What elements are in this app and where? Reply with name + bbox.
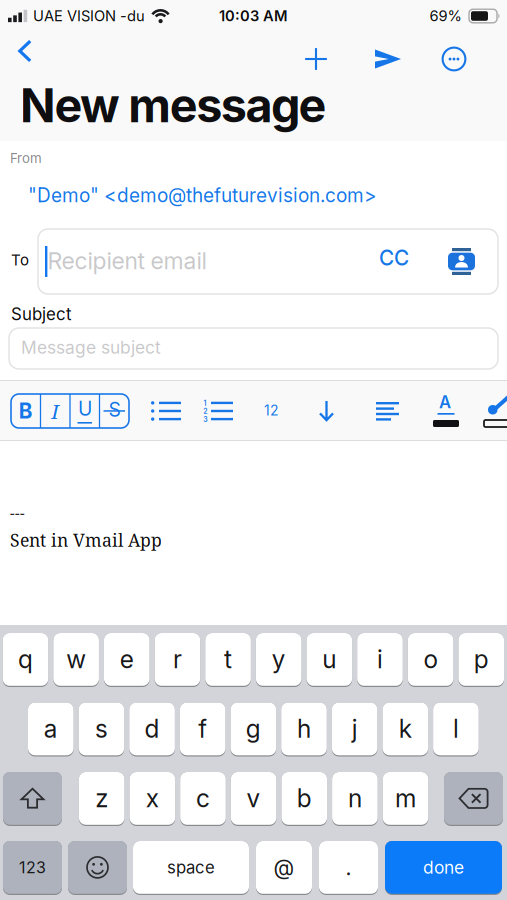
button[interactable]: k: [382, 702, 428, 756]
button[interactable]: h: [281, 702, 327, 756]
staticText: n: [348, 783, 362, 813]
button[interactable]: Align text: [376, 402, 399, 421]
button[interactable]: Insert: [319, 400, 334, 421]
staticText: k: [399, 714, 412, 744]
staticText: Message subject: [21, 337, 161, 358]
button[interactable]: 123: [3, 841, 62, 895]
button[interactable]: y: [256, 633, 301, 687]
button[interactable]: e: [104, 633, 150, 687]
button[interactable]: d: [129, 702, 175, 756]
staticText: Recipient email: [47, 247, 206, 275]
staticText: To: [11, 251, 29, 269]
button[interactable]: .: [319, 841, 378, 895]
staticText: t: [224, 644, 232, 674]
staticText: l: [453, 714, 459, 744]
staticText: s: [95, 714, 108, 744]
staticText: "Demo" <demo@thefuturevision.com>: [28, 184, 377, 207]
staticText: w: [66, 644, 86, 674]
staticText: New message: [20, 77, 326, 133]
button[interactable]: v: [231, 772, 276, 826]
button[interactable]: n: [332, 772, 378, 826]
staticText: b: [297, 783, 312, 813]
button[interactable]: c: [180, 772, 226, 826]
staticText: space: [167, 857, 215, 877]
button[interactable]: p: [458, 633, 504, 687]
staticText: done: [423, 857, 464, 878]
button[interactable]: t: [205, 633, 251, 687]
staticText: m: [395, 783, 416, 813]
staticText: y: [272, 644, 286, 674]
staticText: A: [439, 392, 451, 412]
staticText: e: [120, 644, 134, 674]
button[interactable]: Bullet list: [151, 400, 181, 422]
button[interactable]: i: [357, 633, 403, 687]
staticText: a: [44, 714, 58, 744]
staticText: .: [345, 854, 351, 880]
button[interactable]: u: [306, 633, 352, 687]
staticText: d: [145, 714, 160, 744]
button[interactable]: q: [3, 633, 48, 687]
button[interactable]: Highlight color: [484, 394, 507, 427]
staticText: p: [474, 644, 489, 674]
button[interactable]: Recipient email: [38, 229, 498, 294]
staticText: j: [352, 714, 358, 744]
button[interactable]: l: [433, 702, 479, 756]
button[interactable]: s: [79, 702, 124, 756]
button[interactable]: Add: [299, 41, 333, 77]
button[interactable]: Italic: [40, 394, 70, 428]
staticText: c: [196, 783, 210, 813]
button[interactable]: Shift: [3, 772, 62, 826]
staticText: z: [95, 783, 108, 813]
staticText: 10:03 AM: [219, 7, 288, 25]
staticText: r: [173, 644, 182, 674]
button[interactable]: f: [180, 702, 225, 756]
staticText: ---: [10, 503, 25, 523]
button[interactable]: x: [129, 772, 175, 826]
button[interactable]: Bold: [11, 394, 40, 428]
button[interactable]: g: [231, 702, 276, 756]
button[interactable]: Text color: [433, 394, 459, 427]
staticText: o: [424, 644, 438, 674]
staticText: 2: [203, 407, 207, 415]
staticText: 1: [204, 399, 207, 407]
button[interactable]: Font size: [264, 402, 279, 419]
button[interactable]: Numbered list: [203, 400, 233, 422]
button[interactable]: Back: [8, 33, 42, 69]
staticText: B: [19, 398, 33, 423]
button[interactable]: j: [332, 702, 377, 756]
staticText: 69%: [429, 7, 461, 25]
button[interactable]: @: [256, 841, 312, 895]
staticText: f: [198, 714, 207, 744]
button[interactable]: a: [28, 702, 74, 756]
staticText: q: [18, 644, 33, 674]
button[interactable]: w: [53, 633, 99, 687]
staticText: @: [273, 854, 294, 880]
button[interactable]: Send: [370, 41, 406, 77]
button[interactable]: Add contact: [448, 248, 475, 275]
staticText: u: [322, 644, 336, 674]
button[interactable]: CC: [375, 242, 413, 274]
staticText: g: [246, 714, 261, 744]
staticText: S: [108, 398, 120, 421]
button[interactable]: done: [385, 841, 502, 895]
button[interactable]: "Demo" <demo@thefuturevision.com>: [28, 184, 377, 207]
staticText: From: [10, 150, 42, 166]
staticText: Sent in Vmail App: [10, 528, 162, 552]
button[interactable]: m: [383, 772, 428, 826]
button[interactable]: o: [408, 633, 453, 687]
staticText: UAE VISION -du: [33, 7, 145, 25]
button[interactable]: z: [79, 772, 124, 826]
staticText: Subject: [11, 304, 71, 324]
button[interactable]: Strikethrough: [99, 394, 129, 428]
staticText: h: [297, 714, 311, 744]
button[interactable]: Delete: [444, 772, 503, 826]
button[interactable]: b: [281, 772, 327, 826]
staticText: 3: [203, 415, 207, 424]
button[interactable]: r: [155, 633, 200, 687]
button[interactable]: Emoji: [68, 841, 127, 895]
button[interactable]: More options: [437, 41, 471, 77]
button[interactable]: Underline: [70, 394, 99, 428]
button[interactable]: space: [133, 841, 249, 895]
button[interactable]: Message subject: [9, 328, 498, 369]
staticText: I: [51, 397, 59, 425]
